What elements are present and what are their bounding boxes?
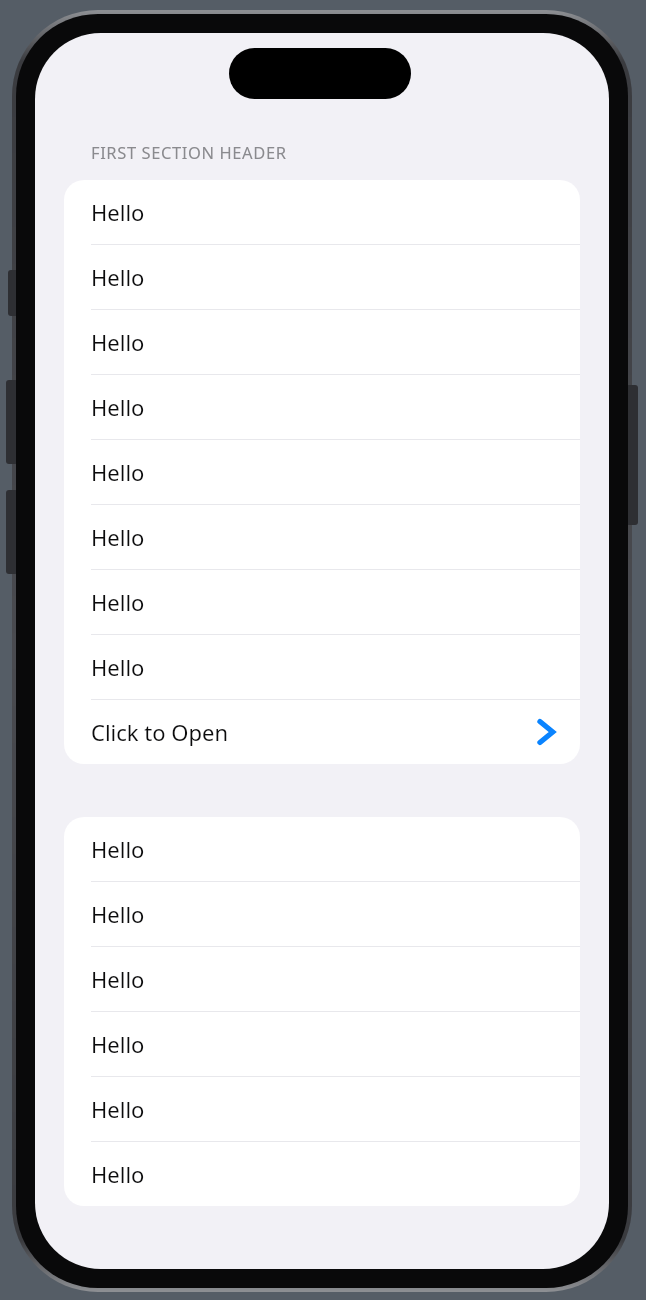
button[interactable]: Hello (64, 310, 580, 374)
staticText: Hello (91, 964, 145, 994)
button[interactable]: Hello (64, 882, 580, 946)
button[interactable]: Hello (64, 947, 580, 1011)
staticText: Hello (91, 587, 145, 617)
staticText: Hello (91, 652, 145, 682)
staticText: Hello (91, 262, 145, 292)
staticText: FIRST SECTION HEADER (91, 141, 287, 163)
staticText: Hello (91, 522, 145, 552)
other: Open (538, 719, 554, 745)
staticText: Hello (91, 327, 145, 357)
button[interactable]: Hello (64, 375, 580, 439)
staticText: Hello (91, 1094, 145, 1124)
staticText: Hello (91, 392, 145, 422)
staticText: Hello (91, 197, 145, 227)
button[interactable]: Hello (64, 635, 580, 699)
button[interactable]: Hello (64, 505, 580, 569)
staticText: Hello (91, 1159, 145, 1189)
staticText: Hello (91, 899, 145, 929)
staticText: Hello (91, 834, 145, 864)
button[interactable]: Hello (64, 245, 580, 309)
button[interactable]: Hello (64, 817, 580, 881)
button[interactable]: Hello (64, 570, 580, 634)
button[interactable]: Click to Open (64, 700, 580, 764)
button[interactable]: Hello (64, 1012, 580, 1076)
staticText: Hello (91, 1029, 145, 1059)
button[interactable]: Hello (64, 1077, 580, 1141)
staticText: Hello (91, 457, 145, 487)
button[interactable]: Hello (64, 440, 580, 504)
button[interactable]: Hello (64, 180, 580, 244)
button[interactable]: Hello (64, 1142, 580, 1206)
staticText: Click to Open (91, 717, 228, 747)
